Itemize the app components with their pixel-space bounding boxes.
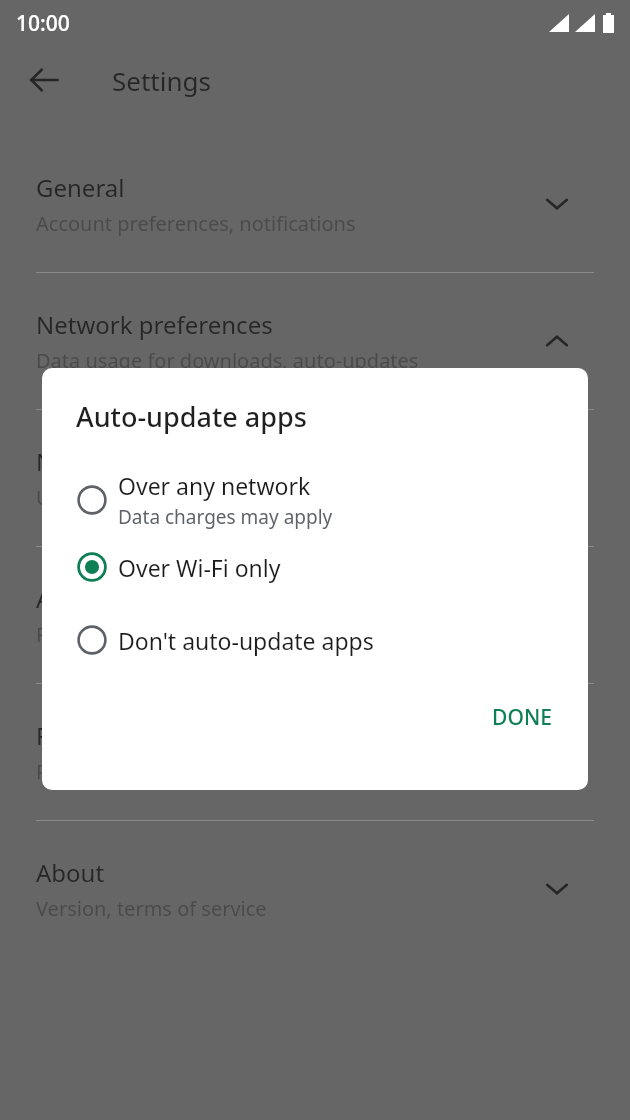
staticText: About — [36, 856, 105, 889]
staticText: Fingerprint, purchase authentication — [36, 621, 381, 648]
button[interactable]: Authentication — [0, 571, 630, 659]
button[interactable]: About — [0, 845, 630, 933]
staticText: Settings — [112, 63, 211, 98]
staticText: Notifications — [36, 445, 179, 478]
staticText: Over any network — [118, 470, 311, 501]
button[interactable]: Back — [14, 50, 74, 110]
button[interactable]: Over Wi-Fi only — [42, 544, 588, 590]
staticText: 10:00 — [16, 9, 70, 38]
staticText: General — [36, 171, 125, 204]
staticText: Family — [36, 719, 109, 752]
staticText: Version, terms of service — [36, 895, 267, 922]
button[interactable]: Notifications — [0, 434, 630, 522]
button[interactable]: Network preferences — [0, 297, 630, 385]
staticText: Authentication — [36, 582, 203, 615]
button[interactable]: Over any network — [42, 467, 588, 533]
staticText: Account preferences, notifications — [36, 210, 356, 237]
button[interactable]: General — [0, 160, 630, 248]
staticText: Parental control, parent guide — [36, 758, 318, 785]
button[interactable]: Family — [0, 708, 630, 796]
staticText: Auto-update apps — [76, 398, 307, 435]
staticText: Network preferences — [36, 308, 273, 341]
staticText: DONE — [492, 703, 552, 732]
staticText: Over Wi-Fi only — [118, 552, 281, 583]
staticText: Updates, offers, pre-registration — [36, 484, 338, 511]
staticText: Data usage for downloads, auto-updates — [36, 347, 419, 374]
staticText: Data charges may apply — [118, 504, 333, 530]
button[interactable]: Don't auto-update apps — [42, 617, 588, 663]
button[interactable]: DONE — [476, 693, 568, 742]
staticText: Don't auto-update apps — [118, 625, 374, 656]
